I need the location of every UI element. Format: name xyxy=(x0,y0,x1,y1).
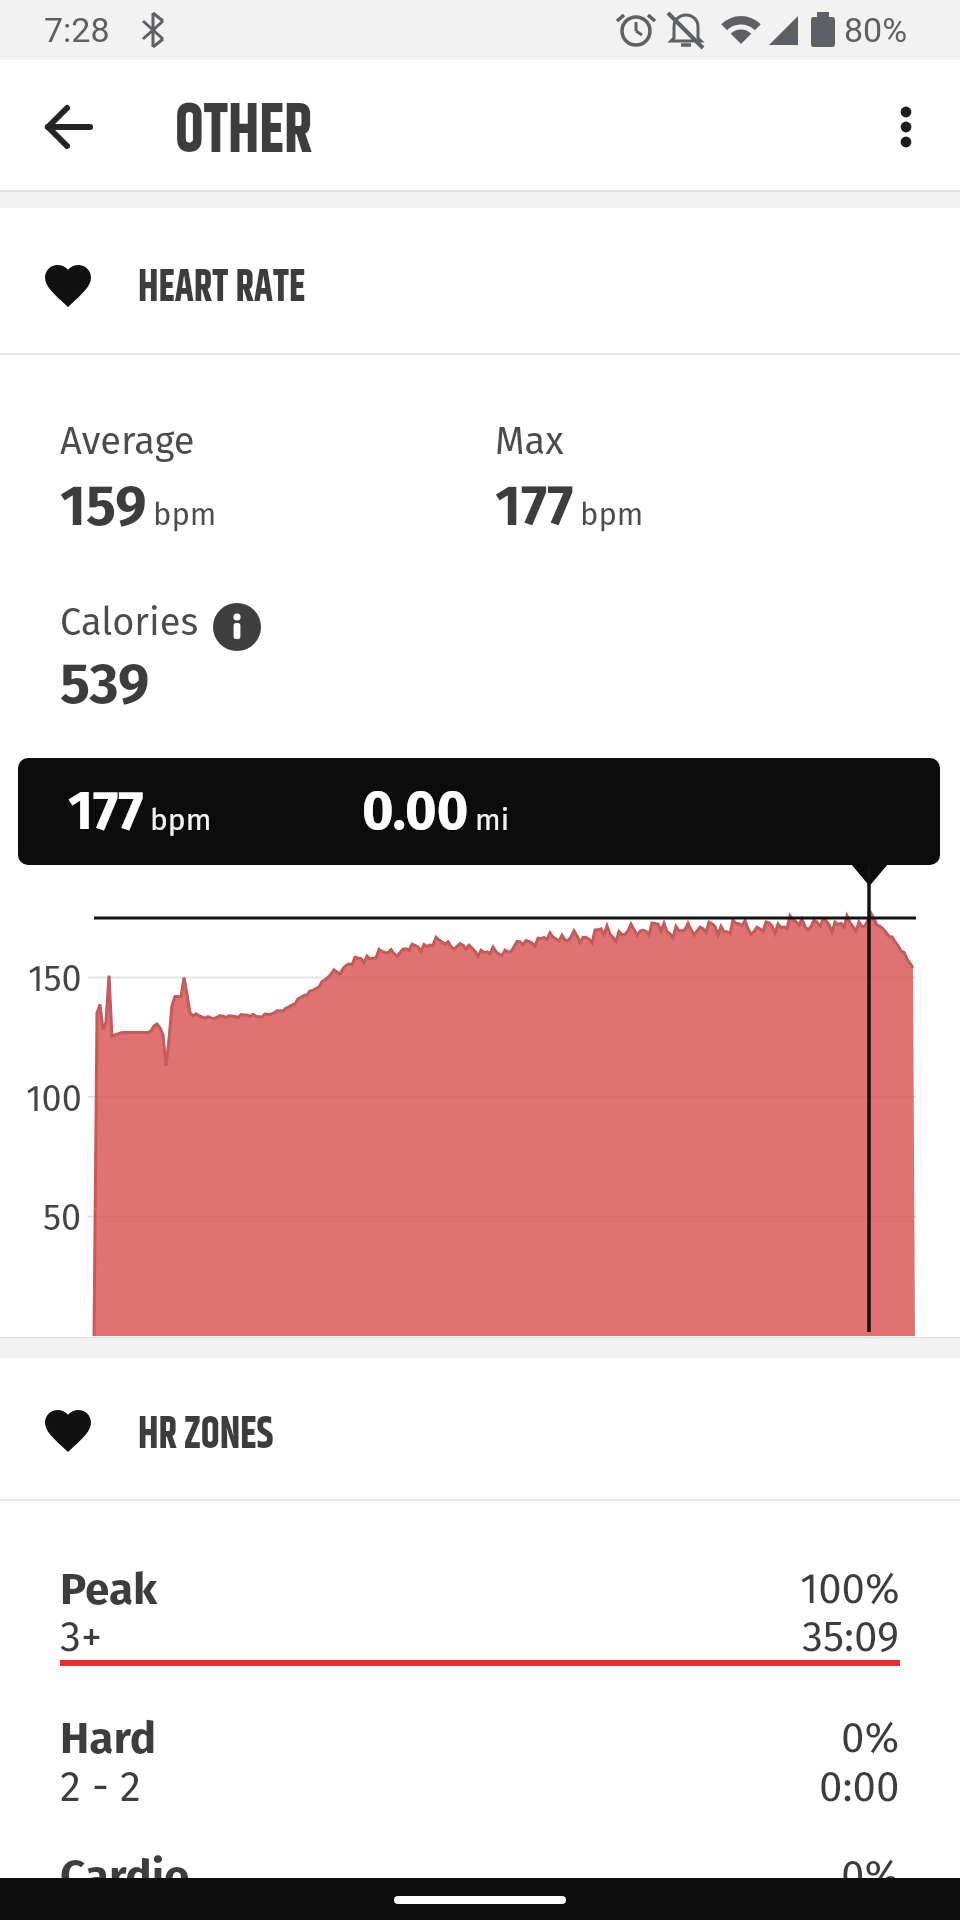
staticText: 2 - 2 xyxy=(60,1762,141,1812)
staticText: HEART RATE xyxy=(138,253,305,303)
staticText: 100% xyxy=(800,1564,900,1614)
staticText: bpm xyxy=(153,496,217,533)
staticText: bpm xyxy=(580,496,644,533)
staticText: 539 xyxy=(60,651,150,718)
staticText: 80% xyxy=(844,10,908,50)
staticText: 0:00 xyxy=(819,1762,900,1812)
staticText: mi xyxy=(475,802,510,838)
button[interactable] xyxy=(0,1540,960,1668)
button[interactable] xyxy=(394,1896,566,1904)
staticText: 159 xyxy=(60,473,147,540)
staticText: Max xyxy=(495,418,564,464)
staticText: Calories xyxy=(60,599,199,645)
staticText: Peak xyxy=(60,1563,158,1615)
staticText: 0.00 xyxy=(362,779,469,844)
staticText: Average xyxy=(60,418,195,464)
staticText: Hard xyxy=(60,1712,157,1764)
staticText: 50 xyxy=(43,1196,82,1239)
staticText: OTHER xyxy=(175,78,313,162)
staticText: 7:28 xyxy=(44,10,110,50)
staticText: 3+ xyxy=(60,1612,102,1662)
staticText: 0% xyxy=(841,1851,900,1901)
staticText: 150 xyxy=(28,957,82,1000)
staticText: 177 xyxy=(68,779,144,844)
staticText: 177 xyxy=(495,473,574,540)
staticText: 100 xyxy=(26,1077,82,1120)
button[interactable]: 177 xyxy=(18,758,940,865)
staticText: 35:09 xyxy=(802,1612,900,1662)
button[interactable] xyxy=(876,97,936,157)
staticText: Cardio xyxy=(60,1850,190,1902)
staticText: bpm xyxy=(150,802,212,838)
staticText: 0% xyxy=(841,1713,900,1763)
button[interactable] xyxy=(213,603,261,651)
button[interactable] xyxy=(26,85,110,169)
staticText: HR ZONES xyxy=(138,1400,274,1450)
button[interactable] xyxy=(0,1690,960,1818)
